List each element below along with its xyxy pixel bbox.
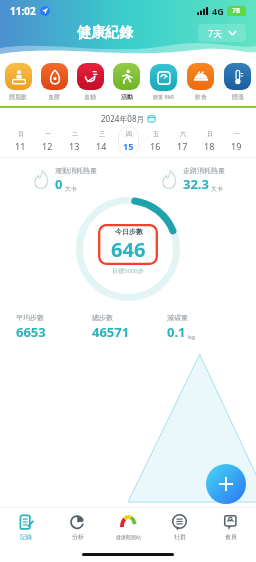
button[interactable]: 體溫 (219, 58, 256, 106)
staticText: 血糖 (84, 93, 96, 101)
button[interactable]: 活動 (108, 58, 145, 106)
button[interactable]: 體重 BMI (145, 58, 182, 106)
staticText: 17 (177, 140, 188, 152)
staticText: 大卡 (211, 185, 223, 193)
button[interactable]: 體脂數 (0, 58, 36, 106)
staticText: 0.1 (167, 323, 186, 341)
staticText: 三 (99, 130, 105, 138)
staticText: 11 (15, 140, 26, 152)
staticText: 14 (96, 140, 107, 152)
button[interactable]: 血糖 (72, 58, 108, 106)
staticText: 12 (42, 140, 53, 152)
staticText: 6653 (16, 323, 46, 341)
staticText: 體重 BMI (153, 94, 174, 101)
button[interactable]: 飲食 (182, 58, 219, 106)
button[interactable]: 減碳量 (167, 313, 242, 341)
button[interactable]: 日 (196, 125, 223, 157)
staticText: 646 (111, 236, 146, 263)
staticText: 健康觀測站 (116, 534, 141, 540)
staticText: 大卡 (65, 185, 77, 193)
button[interactable]: 總步數 (92, 313, 167, 341)
staticText: 體溫 (232, 93, 244, 101)
staticText: 日 (18, 130, 24, 138)
staticText: 活動 (121, 93, 133, 101)
staticText: 記錄 (20, 533, 32, 541)
staticText: 16 (150, 140, 161, 152)
staticText: 11:02 (10, 4, 36, 18)
staticText: 走路消耗熱量 (183, 166, 225, 175)
button[interactable]: 六 (169, 125, 196, 157)
button[interactable]: 四 (115, 125, 142, 157)
staticText: kg (188, 333, 195, 341)
button[interactable]: 會員 (205, 508, 256, 546)
staticText: 分析 (72, 533, 84, 541)
button[interactable]: 平均步數 (16, 313, 92, 341)
button[interactable]: 健康觀測站 (103, 508, 154, 546)
staticText: 13 (69, 140, 80, 152)
staticText: 一 (234, 130, 240, 138)
button[interactable]: 五 (142, 125, 169, 157)
staticText: 7天 (208, 27, 223, 39)
button[interactable]: 一 (223, 125, 250, 157)
staticText: 18 (204, 140, 215, 152)
staticText: 五 (153, 130, 159, 138)
staticText: 2024年08月 (101, 113, 145, 124)
button[interactable]: 二 (61, 125, 88, 157)
staticText: 體脂數 (9, 93, 27, 101)
staticText: 日 (207, 130, 213, 138)
staticText: 78 (232, 6, 241, 16)
staticText: 四 (126, 130, 132, 138)
button[interactable]: 今日步數 (98, 224, 158, 265)
button[interactable]: 一 (34, 125, 61, 157)
button[interactable]: 社群 (154, 508, 205, 546)
staticText: 4G (212, 5, 224, 17)
button[interactable]: 7天 (198, 24, 246, 42)
button[interactable]: 記錄 (0, 508, 52, 546)
staticText: 平均步數 (16, 313, 44, 322)
button[interactable]: 走路消耗熱量 (128, 166, 256, 193)
staticText: 0 (55, 175, 63, 193)
staticText: 減碳量 (167, 313, 188, 322)
button[interactable]: 新增記錄 (206, 464, 246, 504)
staticText: 一 (45, 130, 51, 138)
button[interactable]: 日 (6, 125, 34, 157)
staticText: 15 (123, 140, 134, 152)
button[interactable]: 運動消耗熱量 (0, 166, 128, 193)
staticText: 總步數 (92, 313, 113, 322)
staticText: 32.3 (183, 175, 209, 193)
button[interactable]: 血壓 (36, 58, 72, 106)
staticText: 會員 (225, 533, 237, 541)
staticText: 社群 (174, 533, 186, 541)
staticText: 二 (72, 130, 78, 138)
staticText: 19 (231, 140, 242, 152)
staticText: 46571 (92, 323, 130, 341)
staticText: 運動消耗熱量 (55, 166, 97, 175)
staticText: 飲食 (195, 93, 207, 101)
button[interactable]: 三 (88, 125, 115, 157)
button[interactable]: 分析 (52, 508, 103, 546)
staticText: 六 (180, 130, 186, 138)
staticText: 目標5000步 (112, 267, 144, 275)
staticText: 血壓 (48, 93, 60, 101)
staticText: 健康紀錄 (77, 24, 133, 42)
staticText: 今日步數 (115, 227, 143, 236)
